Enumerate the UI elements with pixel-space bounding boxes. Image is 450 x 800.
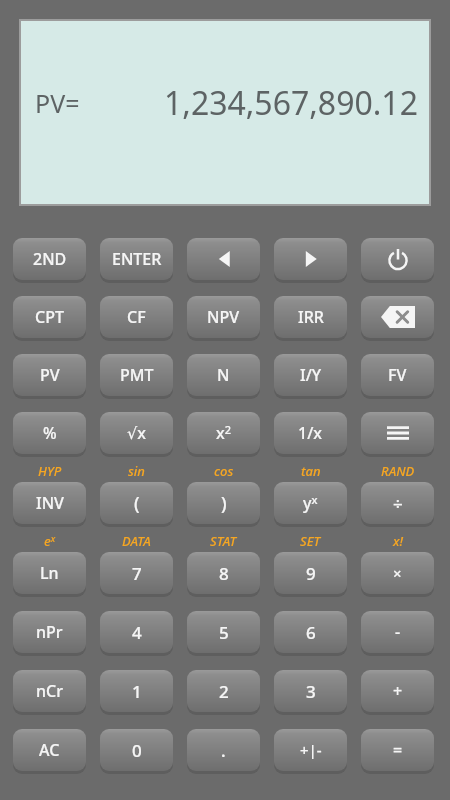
button[interactable]: . (187, 729, 260, 771)
button[interactable]: - (361, 611, 434, 653)
button[interactable]: × (361, 552, 434, 594)
button[interactable]: 5 (187, 611, 260, 653)
staticText: N (217, 364, 230, 386)
staticText: INV (36, 492, 64, 514)
staticText: . (221, 739, 226, 762)
staticText: CPT (35, 306, 64, 328)
staticText: × (393, 563, 402, 583)
staticText: √x (127, 422, 146, 444)
staticText: nCr (36, 680, 63, 702)
staticText: ( (134, 491, 140, 516)
button[interactable]: % (13, 412, 86, 454)
staticText: I/Y (300, 364, 322, 386)
staticText: cos (214, 462, 234, 480)
button[interactable]: Move right (274, 238, 347, 280)
staticText: PMT (120, 364, 154, 386)
staticText: x! (393, 532, 403, 550)
button[interactable]: √x (100, 412, 173, 454)
staticText: 9 (306, 562, 316, 585)
staticText: - (395, 621, 401, 643)
button[interactable]: 1 (100, 670, 173, 712)
staticText: x2 (216, 422, 231, 444)
staticText: + (393, 680, 403, 702)
button[interactable]: ÷ (361, 482, 434, 524)
staticText: 2ND (33, 248, 67, 270)
staticText: SET (300, 532, 321, 550)
button[interactable]: = (361, 729, 434, 771)
staticText: ENTER (112, 248, 162, 270)
button[interactable]: x2 (187, 412, 260, 454)
button[interactable]: Power (361, 238, 434, 280)
button[interactable]: Ln (13, 552, 86, 594)
button[interactable]: 2 (187, 670, 260, 712)
staticText: ) (221, 491, 227, 516)
staticText: sin (128, 462, 145, 480)
staticText: DATA (122, 532, 151, 550)
staticText: 3 (306, 680, 316, 703)
button[interactable]: IRR (274, 296, 347, 338)
staticText: PV= (35, 86, 80, 120)
button[interactable]: Menu (361, 412, 434, 454)
staticText: 2 (219, 680, 229, 703)
button[interactable]: +|- (274, 729, 347, 771)
button[interactable]: N (187, 354, 260, 396)
button[interactable]: 7 (100, 552, 173, 594)
staticText: % (43, 422, 57, 444)
button[interactable]: PV (13, 354, 86, 396)
button[interactable]: 8 (187, 552, 260, 594)
button[interactable]: Backspace (361, 296, 434, 338)
button[interactable]: INV (13, 482, 86, 524)
staticText: CF (127, 306, 146, 328)
staticText: 6 (306, 621, 316, 644)
staticText: NPV (207, 306, 240, 328)
button[interactable]: ENTER (100, 238, 173, 280)
staticText: RAND (381, 462, 415, 480)
staticText: nPr (36, 621, 63, 643)
staticText: = (393, 739, 403, 761)
button[interactable]: nPr (13, 611, 86, 653)
staticText: Ln (40, 562, 59, 584)
staticText: STAT (210, 532, 237, 550)
button[interactable]: FV (361, 354, 434, 396)
button[interactable]: 0 (100, 729, 173, 771)
button[interactable]: CF (100, 296, 173, 338)
button[interactable]: I/Y (274, 354, 347, 396)
button[interactable]: 4 (100, 611, 173, 653)
button[interactable]: nCr (13, 670, 86, 712)
staticText: 1 (132, 680, 142, 703)
staticText: 8 (219, 562, 229, 585)
staticText: tan (301, 462, 321, 480)
staticText: +|- (300, 740, 322, 760)
staticText: IRR (298, 306, 324, 328)
staticText: FV (388, 364, 407, 386)
button[interactable]: 9 (274, 552, 347, 594)
button[interactable]: 3 (274, 670, 347, 712)
button[interactable]: AC (13, 729, 86, 771)
button[interactable]: 6 (274, 611, 347, 653)
button[interactable]: NPV (187, 296, 260, 338)
button[interactable]: 1/x (274, 412, 347, 454)
staticText: AC (39, 739, 60, 761)
button[interactable]: + (361, 670, 434, 712)
staticText: HYP (38, 462, 62, 480)
staticText: 7 (132, 562, 142, 585)
staticText: yx (303, 492, 318, 514)
staticText: 1/x (298, 422, 323, 444)
staticText: 4 (132, 621, 142, 644)
button[interactable]: 2ND (13, 238, 86, 280)
staticText: ex (44, 532, 56, 550)
button[interactable]: Move left (187, 238, 260, 280)
staticText: 5 (219, 621, 229, 644)
button[interactable]: ) (187, 482, 260, 524)
button[interactable]: CPT (13, 296, 86, 338)
staticText: PV (40, 364, 60, 386)
button[interactable]: ( (100, 482, 173, 524)
staticText: ÷ (393, 492, 403, 515)
staticText: 1,234,567,890.12 (164, 81, 418, 125)
button[interactable]: PMT (100, 354, 173, 396)
staticText: 0 (132, 739, 142, 762)
button[interactable]: yx (274, 482, 347, 524)
